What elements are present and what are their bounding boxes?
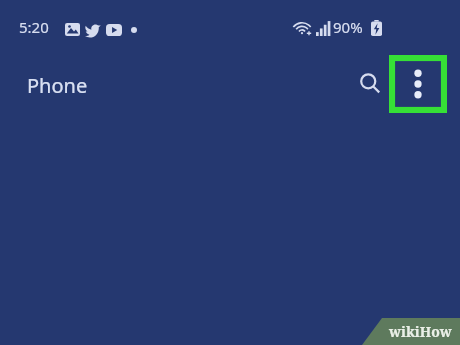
staticText: 5:20 bbox=[19, 17, 49, 37]
button[interactable]: Search bbox=[348, 62, 392, 106]
staticText: Phone bbox=[27, 72, 88, 99]
staticText: wikiHow bbox=[389, 322, 452, 341]
staticText: 90% bbox=[333, 17, 363, 37]
button[interactable]: More options bbox=[389, 55, 447, 113]
